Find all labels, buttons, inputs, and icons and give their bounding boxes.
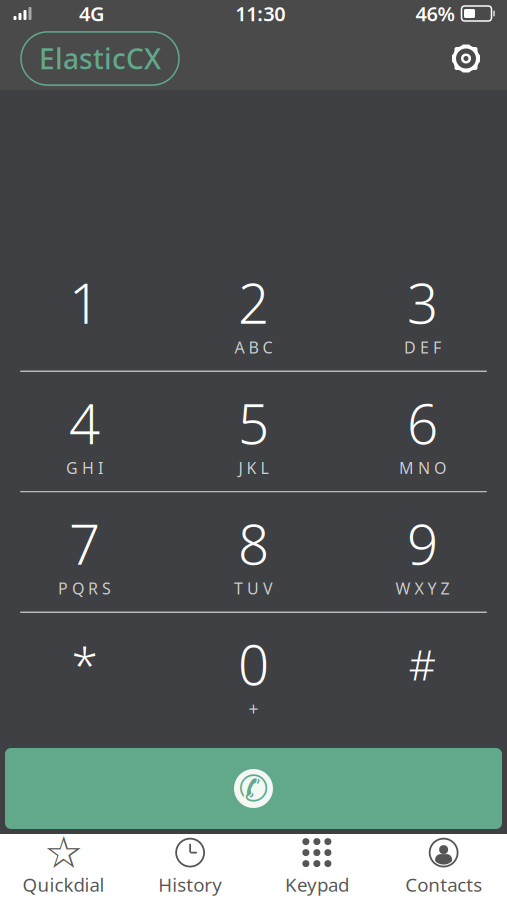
staticText: G H I xyxy=(66,457,103,478)
button[interactable]: 7 xyxy=(0,492,169,611)
staticText: P Q R S xyxy=(58,578,111,599)
button[interactable]: 9 xyxy=(338,492,507,611)
staticText: ★ xyxy=(44,828,83,877)
button[interactable]: History xyxy=(127,834,254,900)
button[interactable]: Keypad xyxy=(253,834,380,900)
button[interactable]: ★ xyxy=(0,834,127,900)
staticText: W X Y Z xyxy=(395,578,449,599)
staticText: 5 xyxy=(238,387,269,459)
button[interactable]: 4 xyxy=(0,372,169,491)
staticText: * xyxy=(71,632,97,696)
button[interactable]: 8 xyxy=(169,492,338,611)
staticText: History xyxy=(158,872,222,897)
button[interactable]: 3 xyxy=(338,251,507,370)
staticText: 8 xyxy=(238,507,269,580)
button[interactable]: Settings xyxy=(446,38,486,78)
staticText: 6 xyxy=(407,387,438,459)
staticText: 7 xyxy=(69,507,100,580)
button[interactable]: 5 xyxy=(169,372,338,491)
staticText: A B C xyxy=(234,337,272,358)
staticText: ★ xyxy=(48,834,78,871)
button[interactable]: ElasticCX xyxy=(21,32,179,85)
staticText: 46% xyxy=(415,0,455,27)
button[interactable]: 0 xyxy=(169,613,338,732)
staticText: Quickdial xyxy=(22,872,104,897)
staticText: M N O xyxy=(399,457,446,478)
staticText: Keypad xyxy=(285,872,349,897)
button[interactable]: 1 xyxy=(0,251,169,370)
staticText: 3 xyxy=(407,266,438,339)
staticText: T U V xyxy=(234,578,273,599)
button[interactable]: # xyxy=(338,613,507,732)
staticText: 1 xyxy=(69,266,100,339)
button[interactable]: 6 xyxy=(338,372,507,491)
staticText: 2 xyxy=(238,266,269,339)
staticText: Contacts xyxy=(405,872,482,897)
staticText: D E F xyxy=(404,337,441,358)
staticText: # xyxy=(408,636,436,692)
staticText: 0 xyxy=(238,628,269,700)
staticText: 4 xyxy=(69,387,100,459)
button[interactable]: Call xyxy=(5,748,502,829)
button[interactable]: * xyxy=(0,613,169,732)
button[interactable]: 2 xyxy=(169,251,338,370)
button[interactable]: Contacts xyxy=(380,834,507,900)
staticText: ElasticCX xyxy=(39,40,161,77)
staticText: J K L xyxy=(238,457,268,478)
staticText: 11:30 xyxy=(235,0,285,27)
staticText: 4G xyxy=(79,0,105,27)
staticText: + xyxy=(248,697,258,720)
staticText: ✆ xyxy=(238,768,268,809)
staticText: 9 xyxy=(407,507,438,580)
